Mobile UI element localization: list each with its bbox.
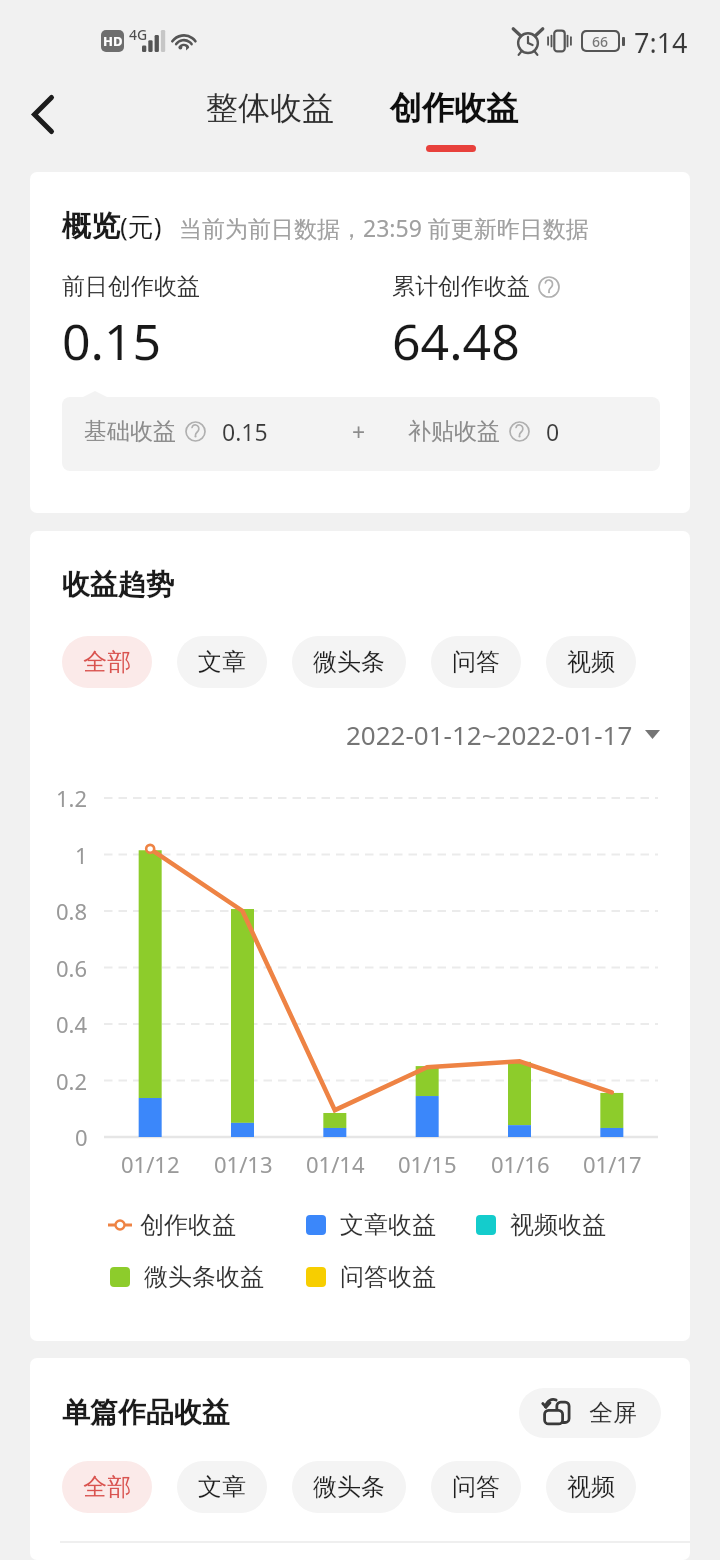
button[interactable]: 整体收益 <box>188 78 352 138</box>
staticText: 0.15 <box>222 416 268 447</box>
button[interactable]: 全部 <box>62 636 152 688</box>
staticText: 1 <box>75 840 88 870</box>
staticText: (元) <box>120 208 162 244</box>
staticText: 视频收益 <box>510 1210 606 1240</box>
staticText: 全屏 <box>589 1398 637 1428</box>
staticText: 文章 <box>198 1472 246 1502</box>
staticText: 01/14 <box>306 1149 365 1179</box>
staticText: 概览 <box>62 208 120 245</box>
staticText: 单篇作品收益 <box>62 1395 230 1430</box>
staticText: HD <box>103 32 123 50</box>
staticText: 0 <box>546 416 560 447</box>
staticText: 创作收益 <box>140 1210 236 1240</box>
staticText: 前日创作收益 <box>62 272 200 301</box>
button[interactable]: 文章 <box>177 636 267 688</box>
staticText: 补贴收益 <box>408 417 500 446</box>
staticText: 01/16 <box>491 1149 550 1179</box>
staticText: 7:14 <box>634 24 688 61</box>
staticText: 01/15 <box>398 1149 457 1179</box>
button[interactable]: 微头条 <box>292 636 406 688</box>
staticText: 01/13 <box>214 1149 273 1179</box>
staticText: + <box>352 416 366 447</box>
staticText: 当前为前日数据，23:59 前更新昨日数据 <box>179 212 589 243</box>
button[interactable]: 视频 <box>546 1461 636 1513</box>
staticText: 累计创作收益 <box>392 272 530 301</box>
staticText: 0.4 <box>56 1009 88 1039</box>
button[interactable]: Back <box>10 72 76 156</box>
staticText: 问答 <box>452 1472 500 1502</box>
staticText: 微头条 <box>313 1472 385 1502</box>
staticText: 01/17 <box>583 1149 642 1179</box>
staticText: 文章 <box>198 647 246 677</box>
button[interactable]: 视频 <box>546 636 636 688</box>
button[interactable]: 微头条 <box>292 1461 406 1513</box>
staticText: 微头条 <box>313 647 385 677</box>
staticText: 2022-01-12~2022-01-17 <box>346 717 633 752</box>
staticText: 4G <box>129 25 148 44</box>
staticText: 基础收益 <box>84 417 176 446</box>
staticText: 微头条收益 <box>144 1262 264 1292</box>
staticText: 视频 <box>567 647 615 677</box>
button[interactable]: 问答 <box>431 636 521 688</box>
staticText: 0.2 <box>56 1066 88 1096</box>
staticText: 01/12 <box>121 1149 180 1179</box>
staticText: 全部 <box>83 1472 131 1502</box>
staticText: 0.6 <box>56 953 88 983</box>
button[interactable]: 全屏 <box>519 1388 661 1438</box>
button[interactable]: 2022-01-12~2022-01-17 <box>30 717 690 752</box>
staticText: 收益趋势 <box>62 567 174 602</box>
staticText: 问答收益 <box>340 1262 436 1292</box>
button[interactable]: 文章 <box>177 1461 267 1513</box>
staticText: 0.8 <box>56 896 88 926</box>
staticText: 0.15 <box>62 307 162 375</box>
staticText: 全部 <box>83 647 131 677</box>
button[interactable]: 问答 <box>431 1461 521 1513</box>
staticText: 66 <box>592 32 609 50</box>
staticText: 问答 <box>452 647 500 677</box>
staticText: 文章收益 <box>340 1210 436 1240</box>
staticText: 64.48 <box>392 307 520 375</box>
staticText: 1.2 <box>56 783 88 813</box>
staticText: 整体收益 <box>206 88 334 128</box>
staticText: 0 <box>75 1122 88 1152</box>
staticText: 视频 <box>567 1472 615 1502</box>
button[interactable]: 创作收益 <box>372 78 536 162</box>
staticText: 创作收益 <box>390 88 518 128</box>
button[interactable]: 全部 <box>62 1461 152 1513</box>
